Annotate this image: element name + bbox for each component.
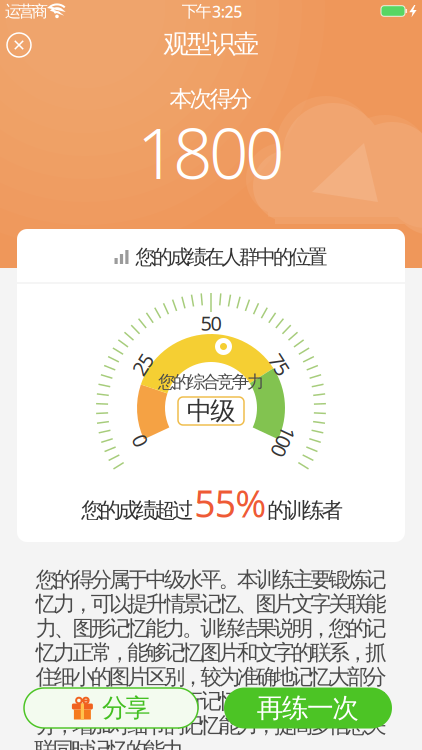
staticText: 再练一次 bbox=[257, 692, 359, 724]
staticText: 本次得分 bbox=[169, 85, 252, 113]
staticText: 3:25 bbox=[212, 1, 242, 22]
staticText: 50 bbox=[200, 310, 221, 336]
staticText: 75 bbox=[269, 351, 290, 378]
staticText: 100 bbox=[268, 428, 299, 455]
staticText: 25 bbox=[132, 351, 153, 378]
staticText: 运营商 bbox=[5, 2, 48, 21]
button[interactable]: 再练一次 bbox=[224, 687, 392, 728]
staticText: 的训练者 bbox=[267, 497, 343, 523]
staticText: 力、图形记忆能力。训练结果说明，您的记 bbox=[36, 615, 386, 641]
staticText: 分享 bbox=[102, 692, 150, 723]
staticText: 住细小的图片区别，较为准确地记忆大部分 bbox=[36, 664, 386, 690]
button[interactable] bbox=[4, 30, 34, 60]
staticText: 您的成绩超过 bbox=[81, 497, 193, 523]
staticText: 下午 bbox=[182, 2, 212, 21]
staticText: 55% bbox=[194, 478, 266, 528]
staticText: 观型识壶 bbox=[163, 28, 259, 59]
staticText: 中级 bbox=[187, 395, 235, 426]
button[interactable]: 分享 bbox=[24, 688, 198, 728]
staticText: 您的得分属于中级水平。本训练主要锻炼记 bbox=[36, 567, 386, 593]
staticText: 联同时记忆的能力。 bbox=[34, 737, 202, 750]
staticText: 0 bbox=[134, 428, 145, 455]
staticText: 图片。建议后续进行记忆方法训练，提升部 bbox=[36, 688, 386, 714]
staticText: 忆力，可以提升情景记忆、图片文字关联能 bbox=[36, 591, 386, 617]
staticText: 您的成绩在人群中的位置 bbox=[135, 245, 327, 269]
staticText: 1800 bbox=[137, 106, 285, 198]
staticText: 您的综合竞争力 bbox=[158, 371, 264, 393]
staticText: 忆力正常，能够记忆图片和文字的联系，抓 bbox=[36, 639, 386, 666]
staticText: 分，增加对细节的记忆能力，提高多信息关 bbox=[36, 712, 386, 739]
